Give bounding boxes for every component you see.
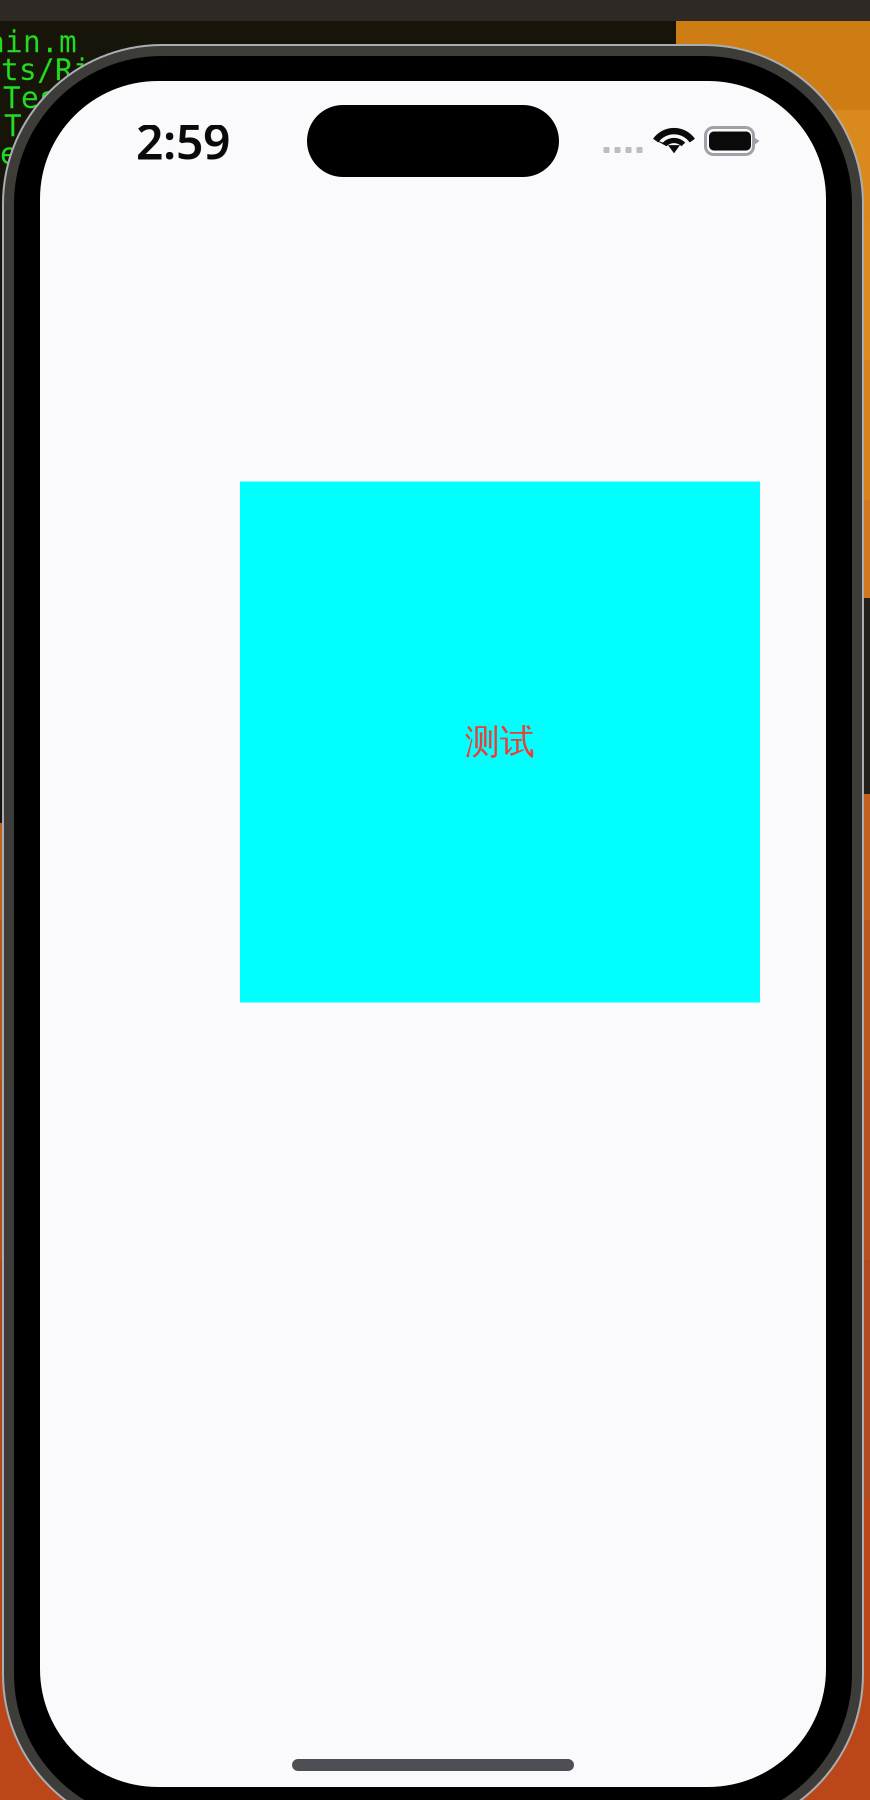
staticText: sts/Ri: [0, 53, 91, 87]
staticText: 2:59: [136, 109, 230, 173]
staticText: ain.m: [0, 25, 77, 59]
staticText: e: [0, 137, 18, 171]
staticText: Tes: [3, 81, 57, 115]
staticText: Te: [4, 109, 40, 143]
staticText: 测试: [465, 721, 535, 763]
